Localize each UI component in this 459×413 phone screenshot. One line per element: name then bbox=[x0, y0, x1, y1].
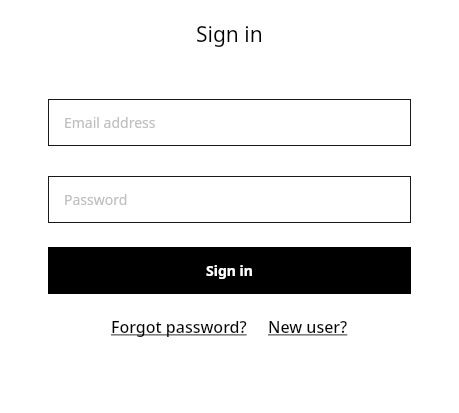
button[interactable]: Forgot password? bbox=[111, 316, 247, 338]
button[interactable]: Password bbox=[48, 176, 411, 223]
staticText: Sign in bbox=[206, 261, 253, 280]
staticText: Forgot password? bbox=[111, 316, 247, 338]
staticText: New user? bbox=[268, 316, 348, 338]
button[interactable]: Sign in bbox=[48, 247, 411, 294]
button[interactable]: New user? bbox=[268, 316, 348, 338]
staticText: Sign in bbox=[196, 20, 263, 49]
staticText: Email address bbox=[64, 113, 156, 132]
button[interactable]: Email address bbox=[48, 99, 411, 146]
staticText: Password bbox=[64, 190, 128, 209]
